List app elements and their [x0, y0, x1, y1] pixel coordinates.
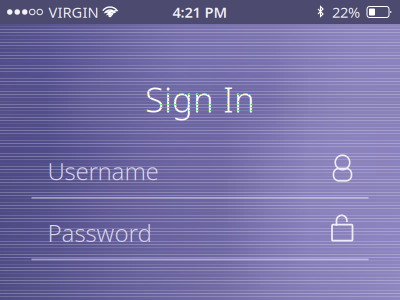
staticText: Sign In	[145, 76, 255, 122]
staticText: 22%	[332, 2, 360, 22]
button[interactable]: Password	[31, 207, 368, 260]
staticText: Username	[47, 155, 158, 187]
staticText: Password	[47, 217, 151, 249]
staticText: 4:21 PM	[172, 2, 227, 22]
button[interactable]: Username	[31, 145, 368, 199]
staticText: VIRGIN	[48, 2, 98, 22]
